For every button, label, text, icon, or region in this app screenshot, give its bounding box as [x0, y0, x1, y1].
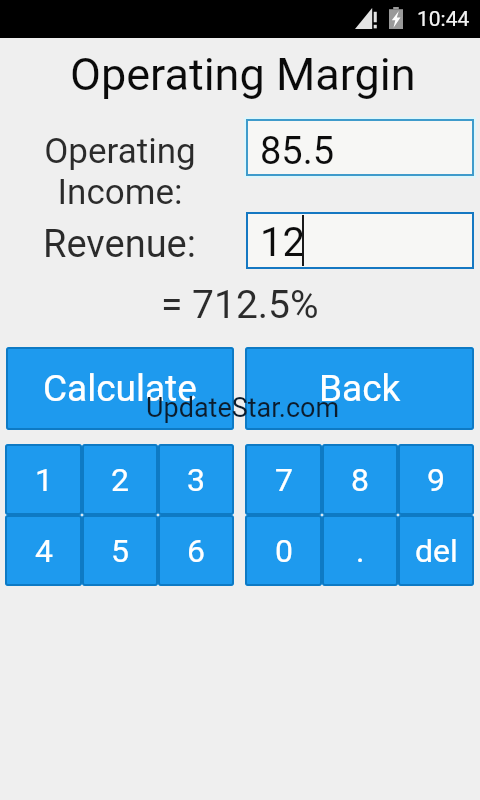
staticText: 85.5: [260, 129, 335, 174]
staticText: 10:44: [417, 7, 470, 32]
other: Mobile signal: [355, 8, 377, 29]
button[interactable]: 2: [82, 444, 158, 515]
other: Battery charging: [389, 7, 403, 29]
staticText: 0: [275, 532, 293, 570]
staticText: Calculate: [43, 367, 197, 410]
button[interactable]: 8: [322, 444, 398, 515]
staticText: 9: [427, 461, 445, 499]
staticText: 1: [35, 461, 53, 499]
button[interactable]: 5: [82, 515, 158, 586]
staticText: del: [415, 532, 458, 570]
button[interactable]: 85.5: [246, 119, 474, 176]
staticText: Operating Margin: [70, 48, 416, 101]
button[interactable]: 0: [245, 515, 322, 586]
button[interactable]: 9: [398, 444, 474, 515]
staticText: 5: [111, 532, 129, 570]
staticText: Back: [319, 367, 401, 410]
button[interactable]: 3: [158, 444, 234, 515]
staticText: 8: [351, 461, 369, 499]
staticText: UpdateStar.com: [146, 392, 340, 424]
staticText: Revenue:: [43, 222, 196, 267]
button[interactable]: 7: [245, 444, 322, 515]
staticText: 3: [187, 461, 205, 499]
button[interactable]: del: [398, 515, 474, 586]
staticText: .: [356, 532, 365, 570]
staticText: 7: [275, 461, 293, 499]
button[interactable]: Calculate: [6, 347, 234, 430]
staticText: 6: [187, 532, 205, 570]
staticText: 4: [35, 532, 53, 570]
button[interactable]: 12: [246, 212, 474, 269]
button[interactable]: 6: [158, 515, 234, 586]
staticText: 2: [111, 461, 129, 499]
staticText: 12: [260, 219, 305, 266]
staticText: = 712.5%: [161, 282, 319, 328]
button[interactable]: 1: [5, 444, 82, 515]
staticText: Operating Income:: [0, 131, 240, 213]
button[interactable]: .: [322, 515, 398, 586]
button[interactable]: 4: [5, 515, 82, 586]
button[interactable]: Back: [245, 347, 474, 430]
